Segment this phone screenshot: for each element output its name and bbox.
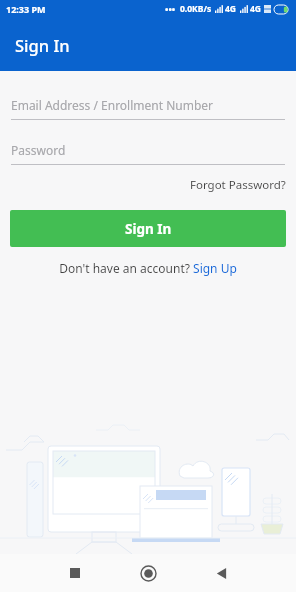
staticText: Email Address / Enrollment Number <box>11 97 214 113</box>
button[interactable]: Recents <box>58 556 92 590</box>
button[interactable]: Don't have an account? Sign Up <box>59 258 237 278</box>
button[interactable]: Sign In <box>10 210 286 247</box>
staticText: ••• <box>165 3 176 15</box>
button[interactable]: Password <box>0 142 296 165</box>
staticText: Sign In <box>15 34 70 56</box>
staticText: Password <box>11 142 66 158</box>
staticText: 12:33 PM <box>6 3 46 15</box>
button[interactable]: Forgot Password? <box>180 174 296 196</box>
button[interactable]: Home <box>131 556 165 590</box>
staticText: 0.0KB/s <box>180 3 212 15</box>
staticText: 4G <box>250 3 262 15</box>
staticText: Sign In <box>125 220 172 238</box>
button[interactable]: Back <box>204 556 238 590</box>
staticText: Forgot Password? <box>190 177 286 193</box>
button[interactable]: Email Address / Enrollment Number <box>0 97 296 120</box>
staticText: 4G <box>225 3 237 15</box>
staticText: Don't have an account? Sign Up <box>59 260 237 276</box>
